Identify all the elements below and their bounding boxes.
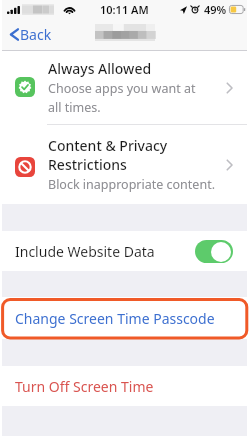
staticText: 10:11 AM [100,2,149,17]
button[interactable]: Content & Privacy Restrictions [2,125,247,204]
staticText: Turn Off Screen Time [15,377,154,396]
staticText: Always Allowed [48,59,152,78]
staticText: 49% [204,2,227,17]
button[interactable]: Always Allowed [2,51,247,124]
button[interactable]: Include Website Data [2,231,247,271]
button[interactable]: Back [2,19,60,50]
button[interactable]: Turn Off Screen Time [2,366,247,406]
staticText: Block inappropriate content. [48,176,215,193]
staticText: Content & Privacy Restrictions [48,136,168,174]
staticText: Include Website Data [15,242,155,261]
button[interactable]: Change Screen Time Passcode [2,297,247,339]
staticText: Choose apps you want at all times. [48,80,196,115]
staticText: Change Screen Time Passcode [15,309,215,328]
staticText: Back [20,25,52,44]
button[interactable]: Include Website Data toggle [195,240,233,263]
